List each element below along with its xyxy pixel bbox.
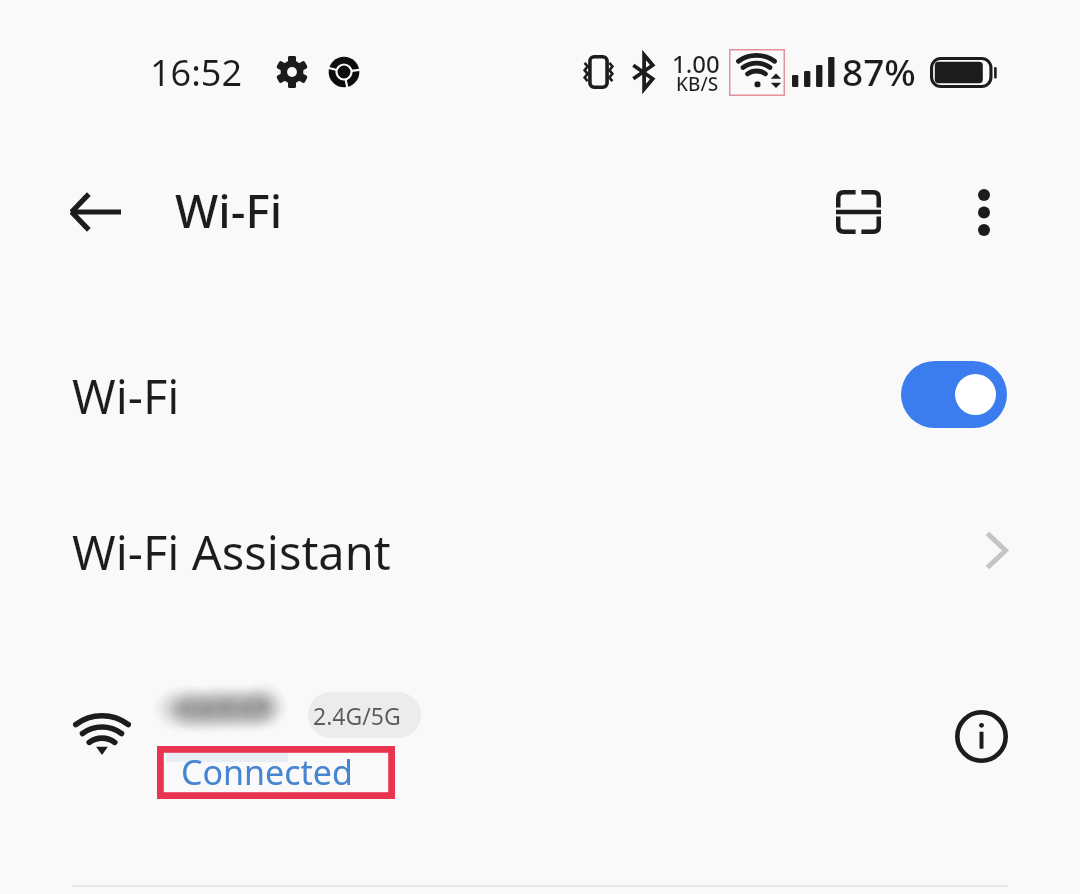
button[interactable]: 2.4G/5G — [0, 660, 1080, 840]
button[interactable]: More options — [944, 172, 1024, 252]
staticText: 2.4G/5G — [313, 700, 401, 731]
button[interactable]: Wi-Fi Assistant — [0, 480, 1080, 640]
staticText: 87% — [842, 46, 916, 96]
staticText: Wi-Fi — [72, 364, 180, 428]
staticText: Wi-Fi Assistant — [72, 520, 391, 584]
staticText: 16:52 — [150, 48, 243, 97]
staticText: Wi-Fi — [175, 179, 283, 242]
button[interactable]: Scan QR code — [818, 172, 898, 252]
button[interactable]: Back — [40, 172, 148, 252]
staticText: KB/S — [676, 71, 719, 97]
staticText: 1.00 — [672, 47, 720, 80]
button[interactable]: Network details — [935, 690, 1027, 782]
button[interactable]: Wi-Fi on — [901, 361, 1007, 428]
button[interactable]: Wi-Fi — [0, 310, 1080, 480]
staticText: Connected — [181, 749, 353, 795]
